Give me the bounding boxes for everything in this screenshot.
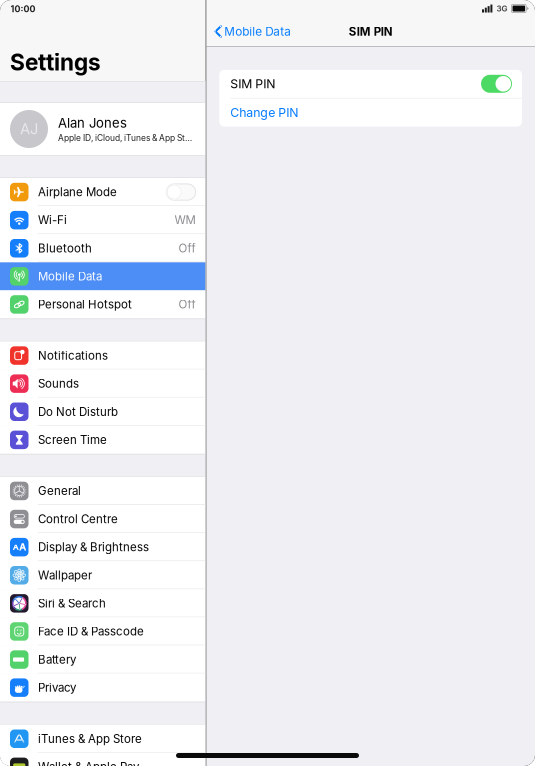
button[interactable]: General [0, 477, 205, 505]
staticText: Mobile Data [224, 24, 291, 39]
button[interactable]: Personal Hotspot [0, 290, 205, 318]
staticText: Display & Brightness [38, 540, 149, 554]
button[interactable]: Airplane Mode [0, 178, 205, 206]
staticText: Siri & Search [38, 596, 106, 610]
staticText: AJ [20, 120, 38, 138]
button[interactable]: Wallet & Apple Pay [0, 753, 205, 766]
staticText: Notifications [38, 349, 108, 362]
staticText: Off [178, 241, 195, 255]
staticText: SIM PIN [230, 76, 275, 91]
button[interactable]: Face ID & Passcode [0, 617, 205, 645]
button[interactable]: Screen Time [0, 426, 205, 454]
staticText: Wallet & Apple Pay [38, 760, 139, 766]
button[interactable]: Sounds [0, 370, 205, 398]
staticText: Do Not Disturb [38, 405, 118, 419]
button[interactable]: Siri & Search [0, 589, 205, 617]
staticText: Change PIN [230, 105, 298, 120]
staticText: SIM PIN [349, 25, 393, 38]
staticText: Privacy [38, 681, 76, 695]
button[interactable]: Battery [0, 645, 205, 674]
button[interactable]: Display & Brightness [0, 533, 205, 561]
staticText: Airplane Mode [38, 185, 117, 199]
staticText: Personal Hotspot [38, 297, 132, 311]
staticText: 3G [496, 4, 507, 13]
button[interactable]: Bluetooth [0, 234, 205, 262]
staticText: Face ID & Passcode [38, 624, 144, 638]
staticText: Wallpaper [38, 568, 92, 582]
button[interactable]: iTunes & App Store [0, 725, 205, 753]
staticText: Apple ID, iCloud, iTunes & App St… [58, 133, 192, 143]
staticText: iTunes & App Store [38, 732, 142, 746]
staticText: WM [174, 213, 195, 227]
button[interactable]: Notifications [0, 341, 205, 370]
staticText: Off [178, 297, 195, 311]
button[interactable]: Wi-Fi [0, 206, 205, 234]
staticText: Alan Jones [58, 115, 127, 131]
button[interactable]: Privacy [0, 674, 205, 702]
staticText: Battery [38, 653, 76, 666]
button[interactable]: AJ [0, 103, 205, 155]
button[interactable]: SIM PIN [219, 70, 522, 98]
button[interactable]: Control Centre [0, 505, 205, 533]
button[interactable]: Mobile Data [0, 262, 205, 290]
staticText: General [38, 484, 81, 498]
staticText: 10:00 [10, 4, 35, 14]
button[interactable]: Do Not Disturb [0, 398, 205, 426]
staticText: Sounds [38, 377, 79, 391]
staticText: Mobile Data [38, 269, 102, 283]
staticText: Bluetooth [38, 241, 92, 255]
staticText: Settings [10, 49, 101, 76]
staticText: Control Centre [38, 512, 118, 526]
staticText: Screen Time [38, 433, 107, 447]
button[interactable]: Change PIN [219, 99, 522, 127]
staticText: Wi-Fi [38, 213, 67, 227]
button[interactable]: Wallpaper [0, 561, 205, 589]
button[interactable]: Mobile Data [206, 19, 291, 44]
